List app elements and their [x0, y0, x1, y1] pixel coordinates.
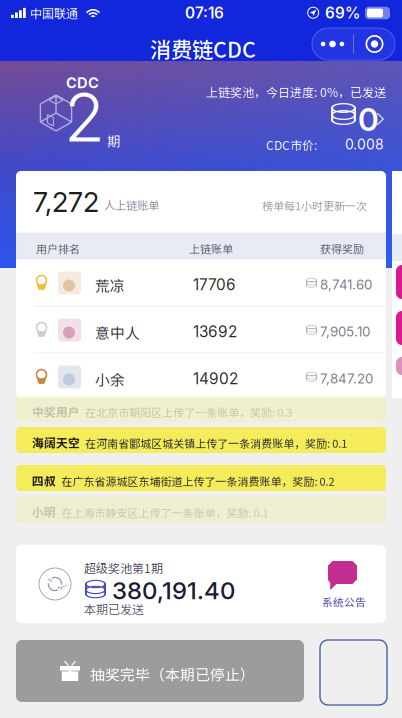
staticText: 0.008	[345, 136, 384, 153]
staticText: 7,905.10	[320, 323, 370, 340]
staticText: 荒凉	[95, 274, 125, 296]
button[interactable]: 抽奖完毕（本期已停止）	[16, 640, 304, 702]
staticText: 在广东省源城区东埔街道上传了一条消费账单，奖励: 0.2	[62, 473, 335, 489]
staticText: 超级奖池第1期	[84, 559, 163, 576]
staticText: 人上链账单	[104, 196, 159, 213]
staticText: 14902	[193, 369, 238, 388]
staticText: 四叔	[32, 472, 56, 489]
staticText: 中奖用户	[32, 403, 80, 420]
staticText: 在北京市朝阳区上传了一条账单，奖励: 0.3	[85, 404, 292, 420]
button[interactable]: 系统公告	[311, 554, 375, 614]
staticText: 07:16	[185, 4, 224, 22]
staticText: 用户排名	[36, 240, 80, 256]
button[interactable]: Share	[320, 640, 387, 705]
staticText: 系统公告	[322, 594, 366, 609]
staticText: 海阔天空	[32, 434, 80, 451]
staticText: 0	[358, 100, 379, 139]
staticText: 获得奖励	[320, 240, 364, 256]
staticText: 69%	[325, 4, 360, 22]
staticText: 在河南省郾城区城关镇上传了一条消费账单，奖励: 0.1	[85, 435, 347, 451]
staticText: 中国联通	[30, 4, 78, 22]
button[interactable]: 小余	[16, 353, 386, 399]
staticText: 本期已发送	[84, 600, 144, 617]
button[interactable]: More options	[312, 28, 395, 60]
staticText: 期	[107, 131, 120, 150]
staticText: 消费链CDC	[150, 33, 256, 64]
staticText: 上链账单	[189, 240, 233, 256]
staticText: 7,272	[33, 185, 99, 219]
staticText: 小明	[32, 503, 56, 520]
staticText: CDC	[66, 74, 99, 92]
staticText: 2	[64, 77, 105, 158]
staticText: 在上海市静安区上传了一条账单，奖励: 0.1	[62, 504, 269, 520]
button[interactable]: 荒凉	[16, 259, 386, 305]
staticText: 17706	[193, 275, 236, 294]
staticText: 13692	[193, 322, 237, 341]
staticText: 7,847.20	[320, 370, 373, 387]
staticText: 意中人	[95, 321, 140, 343]
staticText: CDC市价:	[266, 136, 317, 153]
staticText: 榜单每1小时更新一次	[262, 197, 367, 213]
staticText: 抽奖完毕（本期已停止）	[90, 663, 255, 684]
staticText: 上链奖池，今日进度: 0%，已发送	[206, 83, 386, 100]
staticText: 380,191.40	[112, 576, 235, 605]
staticText: 8,741.60	[320, 276, 372, 293]
staticText: 小余	[95, 368, 125, 390]
button[interactable]: 意中人	[16, 306, 386, 352]
